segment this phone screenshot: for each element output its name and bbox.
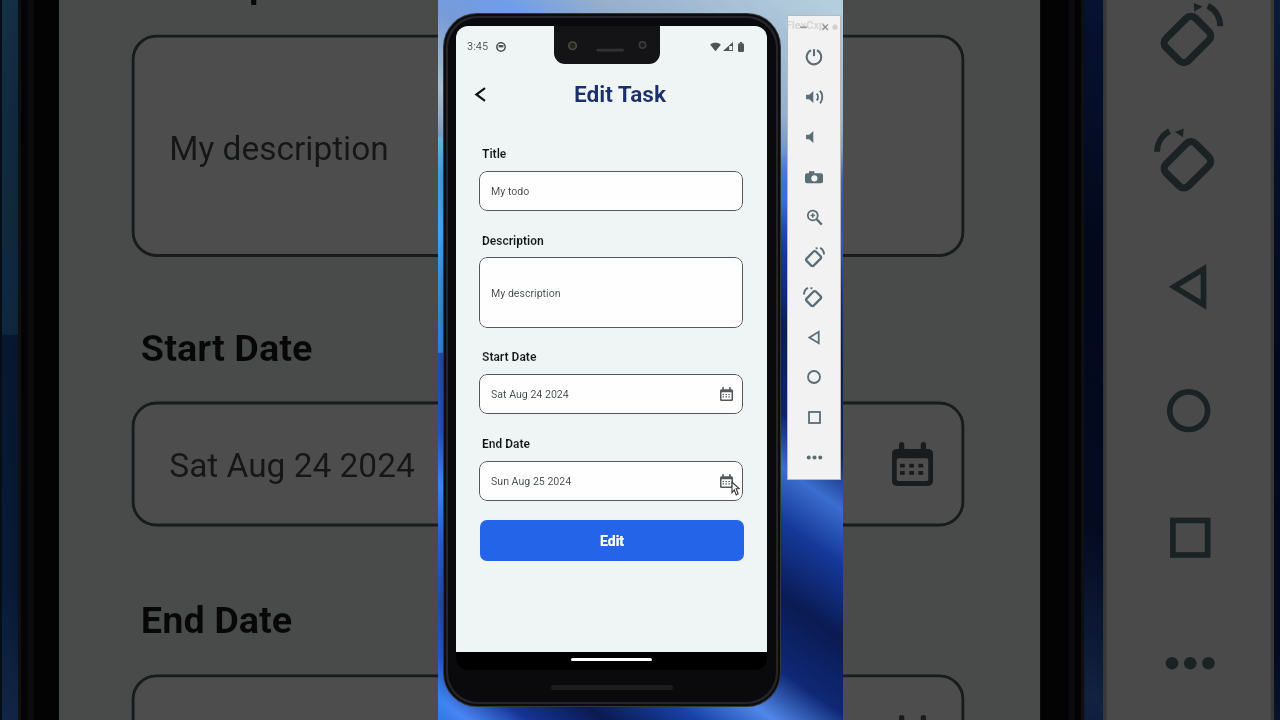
staticText: Start Date bbox=[141, 326, 314, 370]
button[interactable]: Sun Aug 25 2024 bbox=[131, 674, 965, 720]
staticText: Description bbox=[482, 234, 544, 248]
staticText: Edit bbox=[600, 533, 625, 549]
button[interactable]: Pick date bbox=[892, 715, 933, 720]
button[interactable]: Home bbox=[1103, 348, 1274, 473]
button[interactable]: Power bbox=[787, 37, 841, 77]
button[interactable]: Pick date bbox=[720, 387, 733, 401]
staticText: Start Date bbox=[482, 350, 537, 364]
button[interactable]: More bbox=[787, 437, 841, 477]
button[interactable]: Zoom bbox=[787, 197, 841, 237]
staticText: My description bbox=[169, 128, 390, 166]
button[interactable]: Volume down bbox=[787, 117, 841, 157]
staticText: My description bbox=[491, 287, 561, 299]
staticText: Edit Task bbox=[574, 81, 666, 107]
button[interactable]: More bbox=[1103, 599, 1274, 720]
button[interactable]: Rotate left bbox=[787, 237, 841, 277]
button[interactable]: Pick date bbox=[892, 442, 933, 486]
button[interactable]: My todo bbox=[479, 171, 743, 211]
button[interactable]: Sat Aug 24 2024 bbox=[131, 401, 965, 527]
button[interactable]: Rotate right bbox=[787, 277, 841, 317]
staticText: End Date bbox=[141, 599, 292, 643]
button[interactable]: Volume up bbox=[787, 77, 841, 117]
staticText: Sat Aug 24 2024 bbox=[169, 445, 415, 483]
button[interactable]: Rotate left bbox=[1103, 0, 1274, 97]
button[interactable]: Overview bbox=[1103, 473, 1274, 599]
button[interactable]: Screenshot bbox=[787, 157, 841, 197]
button[interactable]: Edit bbox=[480, 520, 744, 561]
button[interactable]: Back bbox=[466, 80, 494, 108]
staticText: My todo bbox=[491, 185, 530, 197]
button[interactable]: My description bbox=[479, 257, 743, 328]
staticText: Sat Aug 24 2024 bbox=[491, 388, 569, 400]
staticText: Description bbox=[141, 0, 337, 6]
button[interactable]: Home bbox=[787, 357, 841, 397]
button[interactable]: Rotate right bbox=[1103, 97, 1274, 222]
staticText: Title bbox=[482, 147, 507, 161]
staticText: FlexCxp bbox=[786, 19, 826, 32]
button[interactable]: Overview bbox=[787, 397, 841, 437]
staticText: Sun Aug 25 2024 bbox=[491, 475, 572, 487]
button[interactable]: Back bbox=[1103, 223, 1274, 348]
button[interactable]: Back bbox=[787, 317, 841, 357]
button[interactable]: Sat Aug 24 2024 bbox=[479, 374, 743, 414]
button[interactable]: Sun Aug 25 2024 bbox=[479, 461, 743, 501]
staticText: 3:45 bbox=[467, 40, 489, 53]
button[interactable]: My description bbox=[131, 34, 965, 257]
button[interactable]: Pick date bbox=[720, 474, 733, 488]
staticText: End Date bbox=[482, 437, 530, 451]
